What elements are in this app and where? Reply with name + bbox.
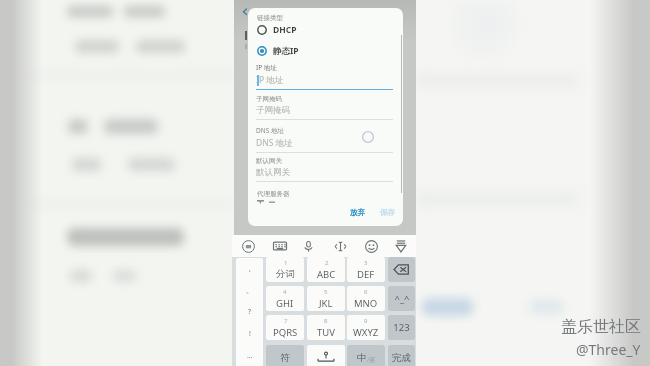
staticText: @Three_Y: [576, 340, 641, 359]
staticText: 默认网关: [256, 157, 282, 165]
staticText: PQRS: [273, 326, 298, 339]
staticText: 静态IP: [273, 45, 299, 57]
staticText: IP 地址: [256, 74, 284, 86]
staticText: DEF: [357, 268, 375, 281]
staticText: 符: [280, 352, 290, 364]
staticText: /英: [367, 356, 376, 364]
staticText: ^_^: [394, 292, 410, 305]
staticText: ?: [248, 307, 252, 317]
button[interactable]: 中: [347, 345, 385, 366]
button[interactable]: 放弃: [344, 203, 371, 222]
button[interactable]: !: [236, 323, 263, 345]
staticText: WXYZ: [353, 326, 379, 339]
staticText: 5: [324, 288, 328, 296]
button[interactable]: ,: [236, 258, 263, 279]
staticText: 123: [393, 321, 410, 334]
staticText: MNO: [354, 297, 378, 310]
button[interactable]: 完成: [388, 345, 415, 366]
button[interactable]: Hide keyboard: [391, 235, 411, 257]
staticText: 保存: [380, 208, 395, 217]
button[interactable]: 9: [347, 315, 385, 340]
button[interactable]: ^_^: [388, 286, 415, 311]
button[interactable]: 2: [307, 257, 345, 282]
button[interactable]: DHCP: [256, 21, 396, 39]
staticText: 8: [324, 317, 328, 325]
button[interactable]: 符: [266, 345, 304, 366]
staticText: DNS 地址: [256, 126, 284, 135]
staticText: DHCP: [273, 24, 297, 36]
staticText: 放弃: [350, 208, 365, 217]
staticText: 中: [357, 352, 367, 364]
staticText: 7: [284, 317, 288, 325]
staticText: GHI: [276, 297, 294, 310]
button[interactable]: Backspace: [388, 257, 415, 282]
staticText: TUV: [317, 326, 335, 339]
button[interactable]: 保存: [374, 203, 401, 222]
staticText: DNS 地址: [256, 137, 293, 149]
staticText: 6: [364, 288, 368, 296]
button[interactable]: 1: [266, 257, 304, 282]
button[interactable]: Space: [307, 345, 345, 366]
staticText: 子网掩码: [256, 105, 290, 116]
staticText: 完成: [392, 352, 411, 364]
button[interactable]: Chinese pinyin input: [238, 235, 258, 257]
staticText: ,: [249, 264, 251, 274]
staticText: 3: [364, 259, 368, 267]
button[interactable]: 4: [266, 286, 304, 311]
button[interactable]: ?: [236, 301, 263, 323]
button[interactable]: Keyboard layout: [270, 235, 290, 257]
staticText: JKL: [319, 297, 333, 310]
button[interactable]: 5: [307, 286, 345, 311]
staticText: 分词: [276, 268, 295, 280]
staticText: 2: [325, 259, 329, 267]
staticText: IP 地址: [256, 63, 277, 72]
button[interactable]: 7: [266, 315, 304, 340]
staticText: 1: [284, 259, 288, 267]
staticText: 9: [364, 317, 368, 325]
staticText: 子网掩码: [256, 95, 282, 103]
button[interactable]: Move cursor: [330, 235, 350, 257]
staticText: 链接类型: [257, 14, 283, 22]
staticText: ABC: [317, 268, 336, 281]
button[interactable]: 6: [347, 286, 385, 311]
button[interactable]: 3: [347, 257, 385, 282]
button[interactable]: Emoji: [361, 235, 381, 257]
button[interactable]: 123: [388, 315, 415, 340]
staticText: …: [247, 351, 253, 361]
button[interactable]: …: [236, 345, 263, 366]
staticText: 4: [283, 288, 287, 296]
staticText: !: [249, 329, 251, 339]
staticText: 代理服务器: [257, 190, 290, 198]
staticText: 。: [246, 286, 253, 295]
button[interactable]: 静态IP: [256, 42, 396, 60]
staticText: 默认网关: [256, 167, 290, 178]
button[interactable]: Voice input: [298, 235, 318, 257]
button[interactable]: 8: [307, 315, 345, 340]
staticText: 盖乐世社区: [561, 317, 641, 337]
